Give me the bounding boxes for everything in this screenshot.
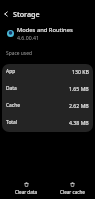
staticText: App: [6, 68, 16, 75]
staticText: 1.65 MB: [69, 85, 89, 92]
button[interactable]: Total: [2, 115, 93, 132]
button[interactable]: Clear data: [3, 182, 49, 195]
staticText: Space used: [6, 50, 32, 57]
staticText: 4.38 MB: [69, 119, 89, 126]
staticText: Modes and Routines: [17, 26, 73, 34]
button[interactable]: Clear cache: [49, 182, 95, 195]
staticText: 4.6.00.41: [17, 34, 39, 40]
staticText: Total: [6, 119, 18, 126]
staticText: Storage: [13, 9, 40, 19]
button[interactable]: Data: [2, 81, 93, 98]
button[interactable]: Cache: [2, 98, 93, 115]
staticText: Data: [6, 85, 17, 92]
button[interactable]: Back: [0, 7, 11, 21]
staticText: Clear data: [15, 189, 37, 195]
staticText: Clear cache: [60, 189, 85, 195]
staticText: 2.62 MB: [69, 102, 89, 109]
staticText: Cache: [6, 102, 20, 109]
staticText: 130 KB: [72, 68, 89, 75]
button[interactable]: App: [2, 64, 93, 81]
